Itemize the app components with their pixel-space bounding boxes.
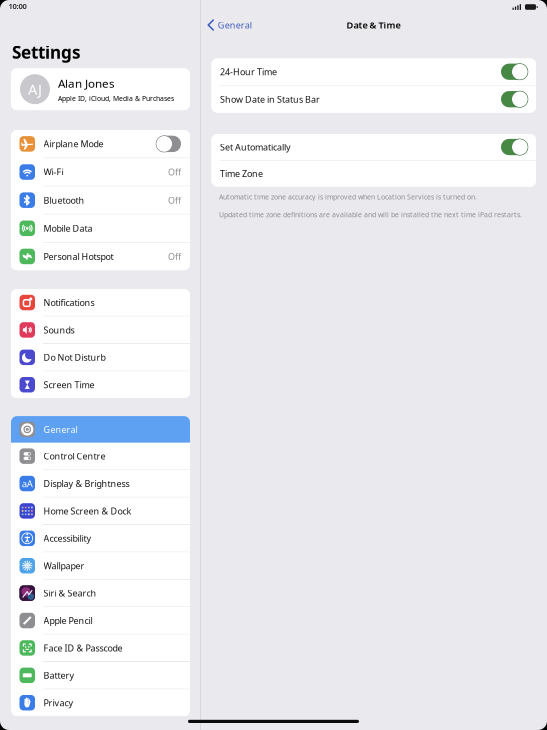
staticText: Notifications (43, 296, 94, 309)
staticText: Off (168, 194, 181, 206)
staticText: Date & Time (346, 19, 400, 31)
button[interactable]: aA (11, 470, 190, 497)
button[interactable]: AJ (11, 68, 190, 110)
button[interactable]: Bluetooth (11, 186, 190, 214)
staticText: Siri & Search (43, 587, 96, 599)
button[interactable]: Control Centre (11, 443, 190, 469)
staticText: aA (22, 477, 33, 490)
button[interactable]: General (11, 416, 190, 443)
staticText: Battery (43, 669, 74, 681)
button[interactable]: Set Automatically (211, 134, 536, 160)
staticText: Privacy (43, 697, 73, 709)
button[interactable]: Airplane Mode (11, 130, 190, 158)
button[interactable]: Do Not Disturb (11, 344, 190, 371)
staticText: General (218, 19, 252, 31)
staticText: Screen Time (43, 379, 94, 391)
staticText: Off (168, 250, 181, 263)
staticText: Accessibility (43, 532, 91, 544)
staticText: Apple Pencil (43, 614, 92, 627)
button[interactable]: Personal Hotspot (11, 243, 190, 270)
button[interactable]: General (200, 16, 252, 34)
staticText: Airplane Mode (43, 138, 103, 150)
button[interactable]: Privacy (11, 689, 190, 716)
staticText: Apple ID, iCloud, Media & Purchases (58, 94, 174, 103)
button[interactable]: Mobile Data (11, 215, 190, 242)
staticText: Display & Brightness (43, 477, 129, 490)
button[interactable]: Apple Pencil (11, 607, 190, 634)
staticText: Control Centre (43, 450, 105, 462)
staticText: Show Date in Status Bar (220, 93, 320, 105)
button[interactable]: Time Zone (211, 161, 536, 186)
button[interactable]: Home Screen & Dock (11, 498, 190, 524)
staticText: Face ID & Passcode (43, 642, 122, 654)
staticText: Do Not Disturb (43, 351, 105, 363)
staticText: Home Screen & Dock (43, 505, 131, 517)
button[interactable]: Accessibility (11, 525, 190, 552)
staticText: 24-Hour Time (220, 66, 277, 78)
staticText: Automatic time zone accuracy is improved… (219, 192, 477, 201)
staticText: AJ (28, 79, 42, 99)
staticText: Wallpaper (43, 560, 84, 572)
staticText: Bluetooth (43, 194, 84, 206)
staticText: General (43, 423, 77, 435)
staticText: Time Zone (220, 168, 263, 180)
staticText: Wi-Fi (43, 166, 63, 178)
button[interactable]: Battery (11, 662, 190, 689)
button[interactable]: 24-Hour Time (211, 58, 536, 85)
staticText: Alan Jones (58, 75, 115, 91)
button[interactable]: Show Date in Status Bar (211, 86, 536, 113)
staticText: Settings (12, 40, 81, 64)
staticText: Personal Hotspot (43, 250, 113, 263)
staticText: Set Automatically (220, 141, 291, 153)
button[interactable]: Sounds (11, 317, 190, 343)
button[interactable]: Wi-Fi (11, 158, 190, 186)
button[interactable]: Wallpaper (11, 552, 190, 579)
button[interactable]: Siri & Search (11, 580, 190, 606)
button[interactable]: Notifications (11, 289, 190, 316)
staticText: Off (168, 166, 181, 178)
staticText: Sounds (43, 324, 74, 336)
button[interactable]: Screen Time (11, 371, 190, 398)
staticText: Updated time zone definitions are availa… (219, 210, 522, 219)
button[interactable]: Face ID & Passcode (11, 635, 190, 661)
staticText: 10:00 (8, 1, 26, 11)
staticText: Mobile Data (43, 222, 92, 234)
